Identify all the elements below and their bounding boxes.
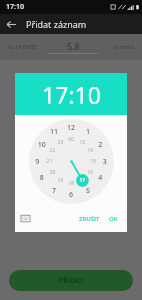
staticText: PŘIDAT <box>59 276 84 286</box>
button[interactable]: ZRUŠIT <box>75 212 104 226</box>
staticText: ZRUŠIT <box>79 215 100 223</box>
staticText: 5.8 <box>67 40 80 52</box>
button[interactable]: OK <box>104 212 123 226</box>
staticText: 17:10 <box>6 2 24 12</box>
button[interactable]: PŘIDAT <box>9 270 133 291</box>
button[interactable]: Switch to keyboard input <box>19 212 32 225</box>
staticText: Přidat záznam <box>26 18 87 30</box>
staticText: OK <box>109 215 118 223</box>
staticText: GLYKÉMIE <box>8 43 37 51</box>
button[interactable]: Back <box>3 16 19 32</box>
staticText: mmol/L <box>114 43 136 51</box>
staticText: 17:10 <box>42 79 101 110</box>
